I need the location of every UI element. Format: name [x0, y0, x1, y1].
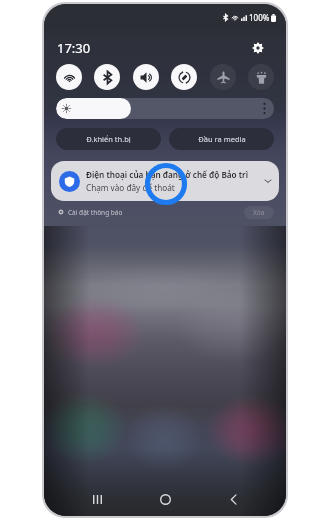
button[interactable]: Back [218, 484, 248, 514]
staticText: Đ.khiển th.bị [86, 134, 131, 144]
button[interactable] [56, 98, 274, 119]
button[interactable]: Airplane mode [210, 64, 236, 90]
staticText: Chạm vào đây để thoát [86, 182, 175, 193]
button[interactable]: Wi-Fi [56, 64, 82, 90]
button[interactable]: Bluetooth [94, 64, 120, 90]
button[interactable]: Recents [82, 484, 112, 514]
button[interactable]: Flashlight [248, 64, 274, 90]
button[interactable]: Đầu ra media [169, 128, 274, 150]
button[interactable]: Đ.khiển th.bị [56, 128, 161, 150]
button[interactable]: Điện thoại của bạn đang ở chế độ Bảo trì [51, 161, 279, 201]
staticText: Cài đặt thông báo [68, 208, 123, 217]
button[interactable]: Home [150, 484, 180, 514]
staticText: Xóa [253, 208, 265, 217]
button[interactable]: Settings [249, 39, 267, 57]
staticText: 17:30 [57, 39, 91, 57]
button[interactable]: Sound [133, 64, 159, 90]
staticText: Đầu ra media [198, 134, 246, 144]
button[interactable]: Auto rotate [171, 64, 197, 90]
button[interactable]: Xóa [244, 206, 274, 219]
staticText: Điện thoại của bạn đang ở chế độ Bảo trì [86, 169, 248, 180]
staticText: 100% [249, 12, 270, 23]
